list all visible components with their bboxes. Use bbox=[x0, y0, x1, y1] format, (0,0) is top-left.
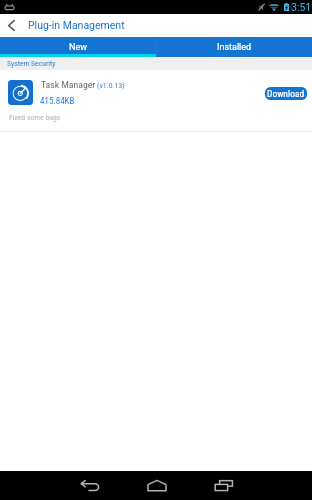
staticText: (v1.0.13) bbox=[97, 81, 125, 90]
button[interactable]: New bbox=[0, 37, 156, 57]
staticText: Task Manager bbox=[41, 79, 96, 90]
staticText: 3:51 bbox=[291, 1, 312, 13]
button[interactable]: Recent apps bbox=[190, 471, 257, 500]
staticText: Plug-in Management bbox=[28, 19, 125, 31]
staticText: Download bbox=[267, 88, 305, 99]
staticText: New bbox=[69, 42, 87, 53]
button[interactable]: Back bbox=[0, 14, 22, 37]
staticText: Installed bbox=[217, 42, 252, 53]
staticText: 415.84KB bbox=[40, 96, 75, 107]
staticText: System Security bbox=[7, 59, 56, 68]
button[interactable]: Back bbox=[56, 471, 123, 500]
button[interactable]: Home bbox=[123, 471, 190, 500]
button[interactable]: Task Manager bbox=[0, 70, 312, 132]
button[interactable]: Download bbox=[265, 87, 307, 100]
button[interactable]: Installed bbox=[156, 37, 312, 57]
staticText: Fixed some bugs bbox=[9, 113, 61, 122]
